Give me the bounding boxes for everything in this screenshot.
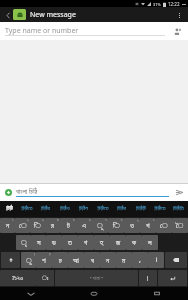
staticText: গ xyxy=(84,239,88,246)
button[interactable]: Send xyxy=(173,186,185,198)
staticText: ৃ xyxy=(21,239,27,246)
staticText: হ xyxy=(100,239,104,246)
button[interactable]: চিঠির xyxy=(112,201,131,217)
button[interactable]: চিঠিও xyxy=(55,201,74,217)
staticText: ১ xyxy=(12,218,14,221)
button[interactable]: ূ xyxy=(92,218,108,233)
staticText: ২ xyxy=(27,218,29,221)
staticText: চিঠির xyxy=(117,206,126,212)
button[interactable]: ে xyxy=(156,218,172,233)
button[interactable]: ৃ xyxy=(16,235,31,250)
staticText: আ xyxy=(73,257,79,264)
staticText: ! xyxy=(34,252,35,257)
button[interactable]: চিঠিতে xyxy=(93,201,112,217)
button[interactable]: চিঠিতি xyxy=(169,201,188,217)
staticText: ৭ xyxy=(105,218,107,221)
button[interactable]: চিঠিটি xyxy=(131,201,150,217)
staticText: চিঠিতে xyxy=(21,206,33,212)
button[interactable]: গ xyxy=(78,235,94,250)
button[interactable]: জ xyxy=(110,235,126,250)
staticText: ি xyxy=(34,222,41,229)
button[interactable]: শ xyxy=(36,252,52,268)
staticText: চিঠিও xyxy=(60,206,70,212)
staticText: ন xyxy=(106,257,110,264)
button[interactable]: ু xyxy=(21,252,36,268)
staticText: ট xyxy=(67,222,70,229)
button[interactable]: ?১২৩ xyxy=(0,270,36,286)
button[interactable]: Back xyxy=(0,287,62,300)
staticText: । xyxy=(155,255,158,265)
button[interactable]: Backspace xyxy=(165,252,187,268)
staticText: ৬ xyxy=(89,218,91,221)
button[interactable]: স xyxy=(31,235,46,250)
staticText: ৯ xyxy=(137,218,139,221)
button[interactable]: ৈ xyxy=(172,218,188,233)
staticText: জ xyxy=(116,239,121,246)
button[interactable]: ত xyxy=(62,235,78,250)
staticText: চিঠি xyxy=(6,206,13,212)
staticText: এ xyxy=(82,222,86,229)
button[interactable]: More options xyxy=(173,9,185,21)
staticText: ?১২৩ xyxy=(12,274,24,282)
button[interactable]: চিঠিন xyxy=(74,201,93,217)
button[interactable]: ল xyxy=(142,235,158,250)
staticText: ? xyxy=(49,252,51,257)
staticText: ন xyxy=(6,222,10,229)
button[interactable]: চিঠি xyxy=(0,201,18,217)
staticText: ৈ xyxy=(176,222,184,229)
staticText: ৫ xyxy=(73,218,75,221)
button[interactable]: চ xyxy=(52,252,68,268)
button[interactable]: ব xyxy=(84,252,100,268)
button[interactable]: ি xyxy=(108,218,124,233)
button[interactable]: , xyxy=(132,252,148,268)
button[interactable]: ে xyxy=(15,218,30,233)
staticText: ৪ xyxy=(57,218,59,221)
staticText: বাংলা চিঠি xyxy=(16,187,38,197)
button[interactable]: Space xyxy=(55,270,138,286)
button[interactable]: চিঠির xyxy=(36,201,55,217)
button[interactable]: Home xyxy=(62,287,125,300)
staticText: ০ xyxy=(153,218,155,221)
staticText: ড xyxy=(52,239,56,246)
button[interactable]: | xyxy=(139,270,157,286)
button[interactable]: এ xyxy=(76,218,92,233)
button[interactable]: Add contact xyxy=(171,25,183,37)
staticText: ক xyxy=(132,239,136,246)
staticText: ৩ xyxy=(42,218,44,221)
button[interactable]: Enter xyxy=(158,270,187,286)
staticText: | xyxy=(146,274,150,282)
staticText: , xyxy=(139,255,141,265)
staticText: ল xyxy=(148,239,152,246)
button[interactable]: চিঠিতে xyxy=(150,201,169,217)
staticText: চিঠিটি xyxy=(136,206,146,212)
staticText: 31% xyxy=(153,2,161,7)
button[interactable]: আ xyxy=(68,252,84,268)
button[interactable]: ট xyxy=(60,218,76,233)
staticText: • বাংলা • xyxy=(90,275,103,281)
staticText: স xyxy=(37,239,41,246)
button[interactable]: ন xyxy=(100,252,116,268)
staticText: ঃ xyxy=(42,275,49,281)
button[interactable]: Shift xyxy=(1,252,20,268)
staticText: ও xyxy=(130,222,134,229)
staticText: শ xyxy=(42,257,46,264)
button[interactable]: ড xyxy=(46,235,62,250)
button[interactable]: Attach xyxy=(3,187,14,198)
staticText: চ xyxy=(59,257,62,264)
button[interactable]: ম xyxy=(116,252,132,268)
staticText: প xyxy=(146,222,150,229)
button[interactable]: । xyxy=(148,252,164,268)
button[interactable]: র xyxy=(45,218,60,233)
button[interactable]: ও xyxy=(124,218,140,233)
button[interactable]: ঃ xyxy=(36,270,54,286)
button[interactable]: ক xyxy=(126,235,142,250)
button[interactable]: Recents xyxy=(125,287,188,300)
button[interactable]: Back xyxy=(3,10,13,20)
button[interactable]: ি xyxy=(30,218,45,233)
button[interactable]: প xyxy=(140,218,156,233)
button[interactable]: হ xyxy=(94,235,110,250)
staticText: 12:22 xyxy=(168,1,180,7)
staticText: ম xyxy=(122,257,126,264)
button[interactable]: ন xyxy=(0,218,15,233)
button[interactable]: চিঠিতে xyxy=(18,201,36,217)
